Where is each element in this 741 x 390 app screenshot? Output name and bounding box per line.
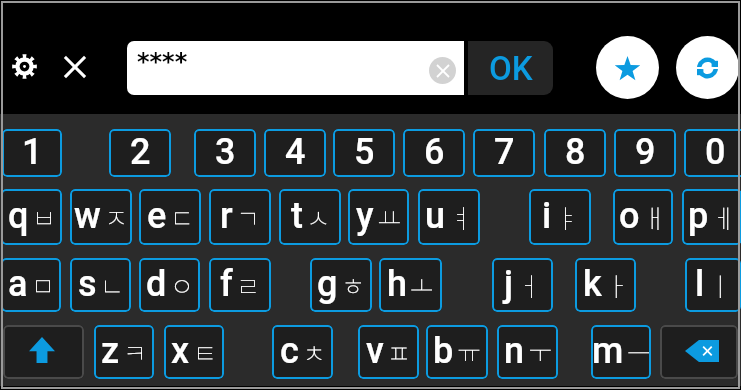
- staticText: ㅛ: [377, 198, 401, 236]
- staticText: n: [504, 330, 525, 372]
- staticText: 8: [565, 131, 586, 173]
- staticText: ㅜ: [528, 333, 552, 371]
- button[interactable]: Clear text: [429, 57, 456, 84]
- staticText: x: [171, 330, 190, 372]
- button[interactable]: 7: [473, 129, 535, 177]
- staticText: o: [619, 195, 640, 237]
- button[interactable]: f: [209, 258, 271, 312]
- staticText: z: [101, 330, 120, 372]
- staticText: ㅂ: [32, 198, 56, 236]
- staticText: ㅠ: [457, 333, 481, 371]
- staticText: p: [688, 195, 709, 237]
- staticText: ㅓ: [517, 266, 541, 304]
- button[interactable]: r: [209, 189, 271, 245]
- staticText: e: [147, 195, 167, 237]
- button[interactable]: l: [685, 258, 741, 312]
- button[interactable]: y: [348, 189, 409, 245]
- button[interactable]: u: [418, 189, 480, 245]
- staticText: ㅁ: [31, 266, 55, 304]
- button[interactable]: o: [613, 189, 673, 245]
- button[interactable]: w: [70, 189, 132, 245]
- staticText: 2: [130, 131, 151, 173]
- button[interactable]: t: [279, 189, 341, 245]
- staticText: q: [8, 195, 29, 237]
- staticText: ㄹ: [236, 266, 260, 304]
- staticText: 1: [22, 131, 43, 173]
- button[interactable]: p: [682, 189, 741, 245]
- staticText: ㅑ: [555, 198, 579, 236]
- button[interactable]: e: [139, 189, 201, 245]
- staticText: 7: [494, 131, 515, 173]
- staticText: ㅌ: [193, 333, 217, 371]
- staticText: t: [291, 195, 303, 237]
- staticText: ㅡ: [627, 333, 651, 371]
- button[interactable]: 6: [403, 129, 465, 177]
- button[interactable]: Close: [59, 51, 91, 83]
- button[interactable]: h: [379, 258, 442, 312]
- staticText: ㅏ: [605, 266, 629, 304]
- button[interactable]: 5: [333, 129, 395, 177]
- staticText: f: [220, 263, 233, 305]
- button[interactable]: 2: [109, 129, 171, 177]
- staticText: w: [74, 195, 101, 237]
- button[interactable]: 8: [544, 129, 606, 177]
- button[interactable]: 9: [614, 129, 676, 177]
- staticText: ㅗ: [410, 266, 434, 304]
- staticText: ****: [137, 48, 188, 76]
- staticText: ㅇ: [170, 266, 194, 304]
- staticText: ㄷ: [170, 198, 194, 236]
- button[interactable]: ****: [127, 41, 464, 95]
- button[interactable]: 3: [194, 129, 256, 177]
- button[interactable]: v: [358, 325, 419, 379]
- button[interactable]: a: [1, 258, 61, 312]
- staticText: ㅊ: [302, 333, 326, 371]
- staticText: j: [504, 263, 514, 305]
- staticText: b: [433, 330, 454, 372]
- button[interactable]: k: [575, 258, 636, 312]
- button[interactable]: j: [492, 258, 553, 312]
- staticText: ㅕ: [449, 198, 473, 236]
- staticText: g: [317, 263, 338, 305]
- button[interactable]: n: [497, 325, 558, 379]
- staticText: d: [146, 263, 167, 305]
- staticText: h: [387, 263, 407, 305]
- staticText: k: [583, 263, 602, 305]
- button[interactable]: Refresh: [676, 36, 739, 99]
- button[interactable]: z: [94, 325, 154, 379]
- button[interactable]: s: [70, 258, 131, 312]
- button[interactable]: x: [164, 325, 224, 379]
- staticText: ㅅ: [306, 198, 330, 236]
- staticText: c: [280, 330, 299, 372]
- button[interactable]: i: [529, 189, 591, 245]
- staticText: ㅔ: [712, 198, 736, 236]
- button[interactable]: Favorite: [596, 36, 659, 99]
- button[interactable]: Shift: [3, 325, 84, 379]
- staticText: ㄱ: [236, 198, 260, 236]
- staticText: OK: [489, 49, 533, 88]
- staticText: ㅋ: [123, 333, 147, 371]
- staticText: 9: [635, 131, 656, 173]
- staticText: 6: [424, 131, 445, 173]
- button[interactable]: q: [1, 189, 62, 245]
- button[interactable]: Backspace: [660, 325, 738, 379]
- button[interactable]: b: [426, 325, 488, 379]
- button[interactable]: Settings: [8, 50, 40, 82]
- staticText: ㅎ: [341, 266, 365, 304]
- button[interactable]: 0: [684, 129, 741, 177]
- staticText: 3: [215, 131, 236, 173]
- button[interactable]: m: [591, 325, 651, 379]
- staticText: ㅈ: [104, 198, 128, 236]
- staticText: y: [356, 195, 374, 237]
- staticText: i: [542, 195, 552, 237]
- button[interactable]: 1: [2, 129, 62, 177]
- staticText: ㄴ: [100, 266, 124, 304]
- button[interactable]: g: [310, 258, 372, 312]
- staticText: 4: [285, 131, 306, 173]
- button[interactable]: OK: [468, 41, 553, 95]
- button[interactable]: c: [272, 325, 333, 379]
- staticText: v: [366, 330, 384, 372]
- button[interactable]: d: [139, 258, 200, 312]
- staticText: r: [220, 195, 233, 237]
- button[interactable]: 4: [264, 129, 326, 177]
- staticText: ㅐ: [643, 198, 667, 236]
